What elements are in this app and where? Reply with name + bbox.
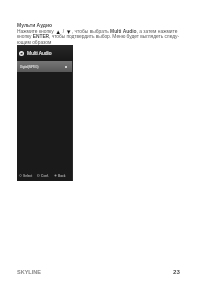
staticText: кнопку ENTER, чтобы подтвердить выбор. М… bbox=[17, 34, 179, 39]
other: Conf. bbox=[37, 174, 40, 177]
staticText: Нажмите кнопку ▲ / ▼, чтобы выбрать Mult… bbox=[17, 28, 178, 35]
staticText: ющим образом bbox=[17, 40, 52, 45]
staticText: Digital(MPEG) bbox=[20, 65, 39, 68]
staticText: Мульти Аудио bbox=[17, 22, 53, 28]
staticText: SKYLINE bbox=[17, 269, 41, 275]
button[interactable]: Digital(MPEG) bbox=[17, 61, 73, 72]
button[interactable]: Audio bbox=[17, 45, 73, 61]
other: Back bbox=[54, 174, 57, 177]
staticText: Back bbox=[58, 174, 66, 178]
button[interactable]: Conf. bbox=[37, 170, 49, 181]
staticText: Conf. bbox=[41, 174, 49, 178]
staticText: Multi Audio bbox=[27, 50, 52, 56]
staticText: 23 bbox=[173, 268, 180, 275]
other: Audio bbox=[19, 51, 24, 56]
staticText: Select bbox=[23, 174, 33, 178]
button[interactable]: Select bbox=[19, 170, 33, 181]
button[interactable]: Back bbox=[54, 170, 66, 181]
other: Select bbox=[19, 174, 22, 177]
